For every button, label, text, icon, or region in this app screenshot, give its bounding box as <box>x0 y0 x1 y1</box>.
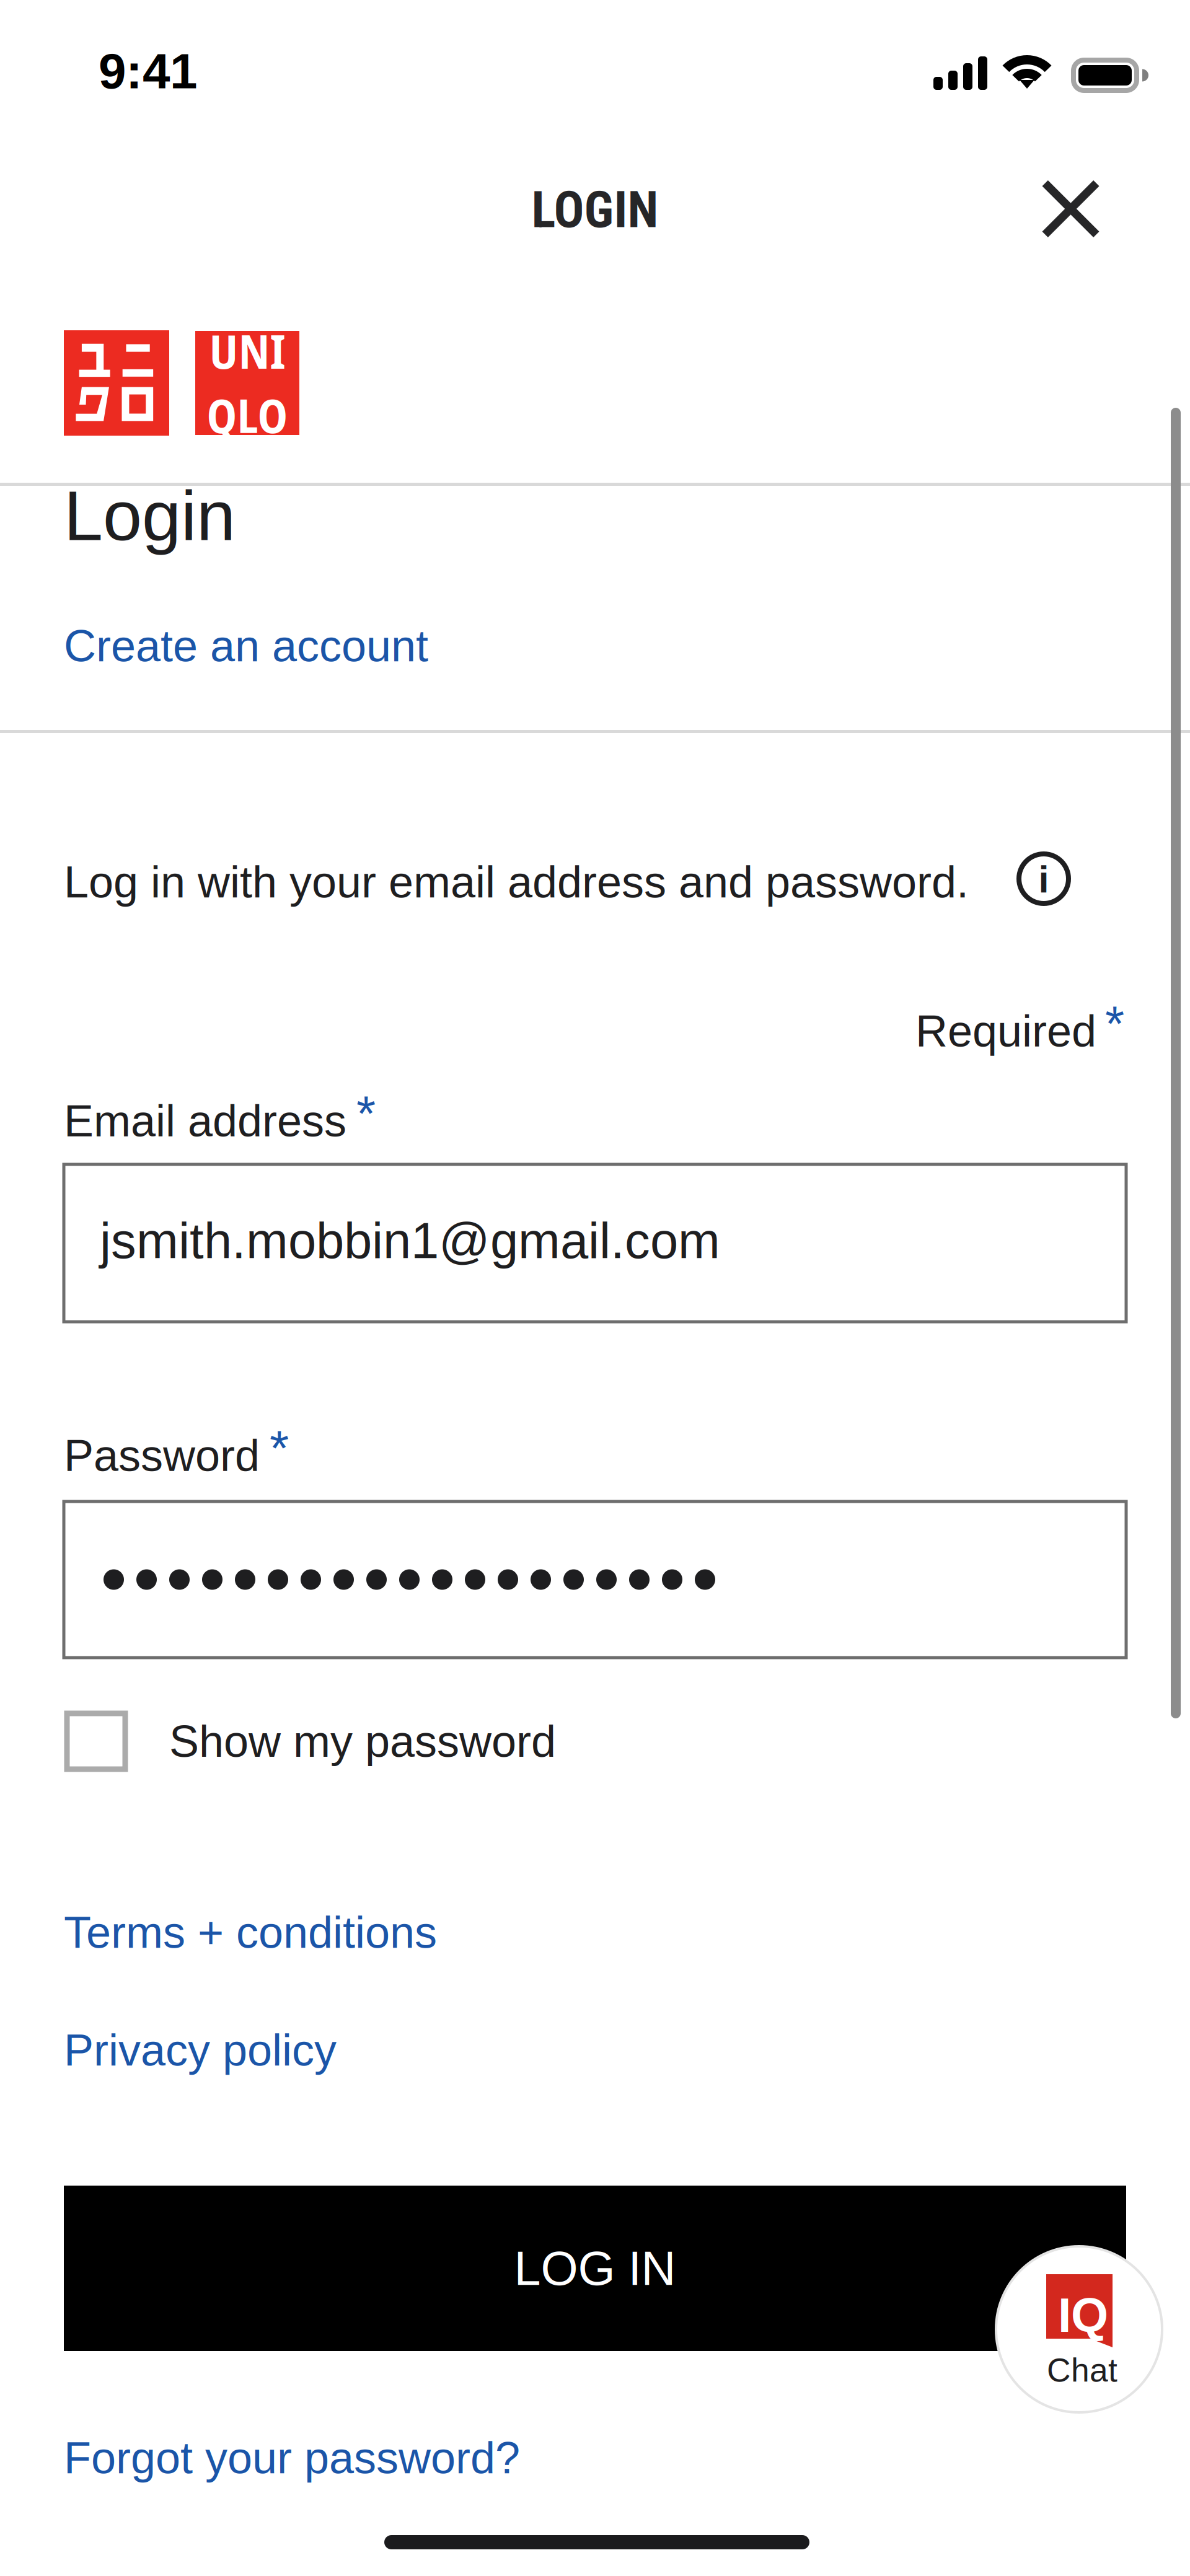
staticText: Log in with your email address and passw… <box>64 857 969 907</box>
staticText: 9:41 <box>99 43 197 99</box>
button[interactable]: Chat <box>996 2246 1163 2414</box>
staticText: * <box>270 1420 289 1476</box>
button[interactable]: Close <box>1016 156 1125 262</box>
staticText: Required <box>915 1006 1096 1056</box>
staticText: Password <box>64 1431 260 1480</box>
staticText: UNI <box>209 319 285 382</box>
staticText: QLO <box>207 384 288 447</box>
button[interactable]: Show my password <box>64 1709 515 1774</box>
button[interactable]: Forgot your password? <box>64 2433 520 2483</box>
button[interactable]: More information <box>1017 852 1070 905</box>
staticText: Chat <box>1047 2352 1117 2389</box>
button[interactable]: Create an account <box>64 621 428 671</box>
staticText: Email address <box>64 1096 346 1146</box>
staticText: Forgot your password? <box>64 2433 520 2483</box>
staticText: Privacy policy <box>64 2025 337 2075</box>
staticText: LOGIN <box>531 180 659 239</box>
staticText: IQ <box>1058 2288 1108 2342</box>
staticText: Terms + conditions <box>64 1907 437 1957</box>
button[interactable]: LOG IN <box>64 2186 1126 2351</box>
button[interactable]: Terms + conditions <box>64 1907 437 1957</box>
staticText: jsmith.mobbin1@gmail.com <box>100 1212 720 1269</box>
staticText: Login <box>64 477 236 555</box>
staticText: * <box>356 1086 376 1141</box>
button[interactable]: Privacy policy <box>64 2025 337 2075</box>
button[interactable]: Login <box>64 477 236 555</box>
staticText: i <box>1038 858 1049 901</box>
staticText: Create an account <box>64 621 428 671</box>
staticText: * <box>1105 996 1124 1051</box>
staticText: LOG IN <box>514 2242 676 2295</box>
staticText: Show my password <box>169 1716 556 1766</box>
